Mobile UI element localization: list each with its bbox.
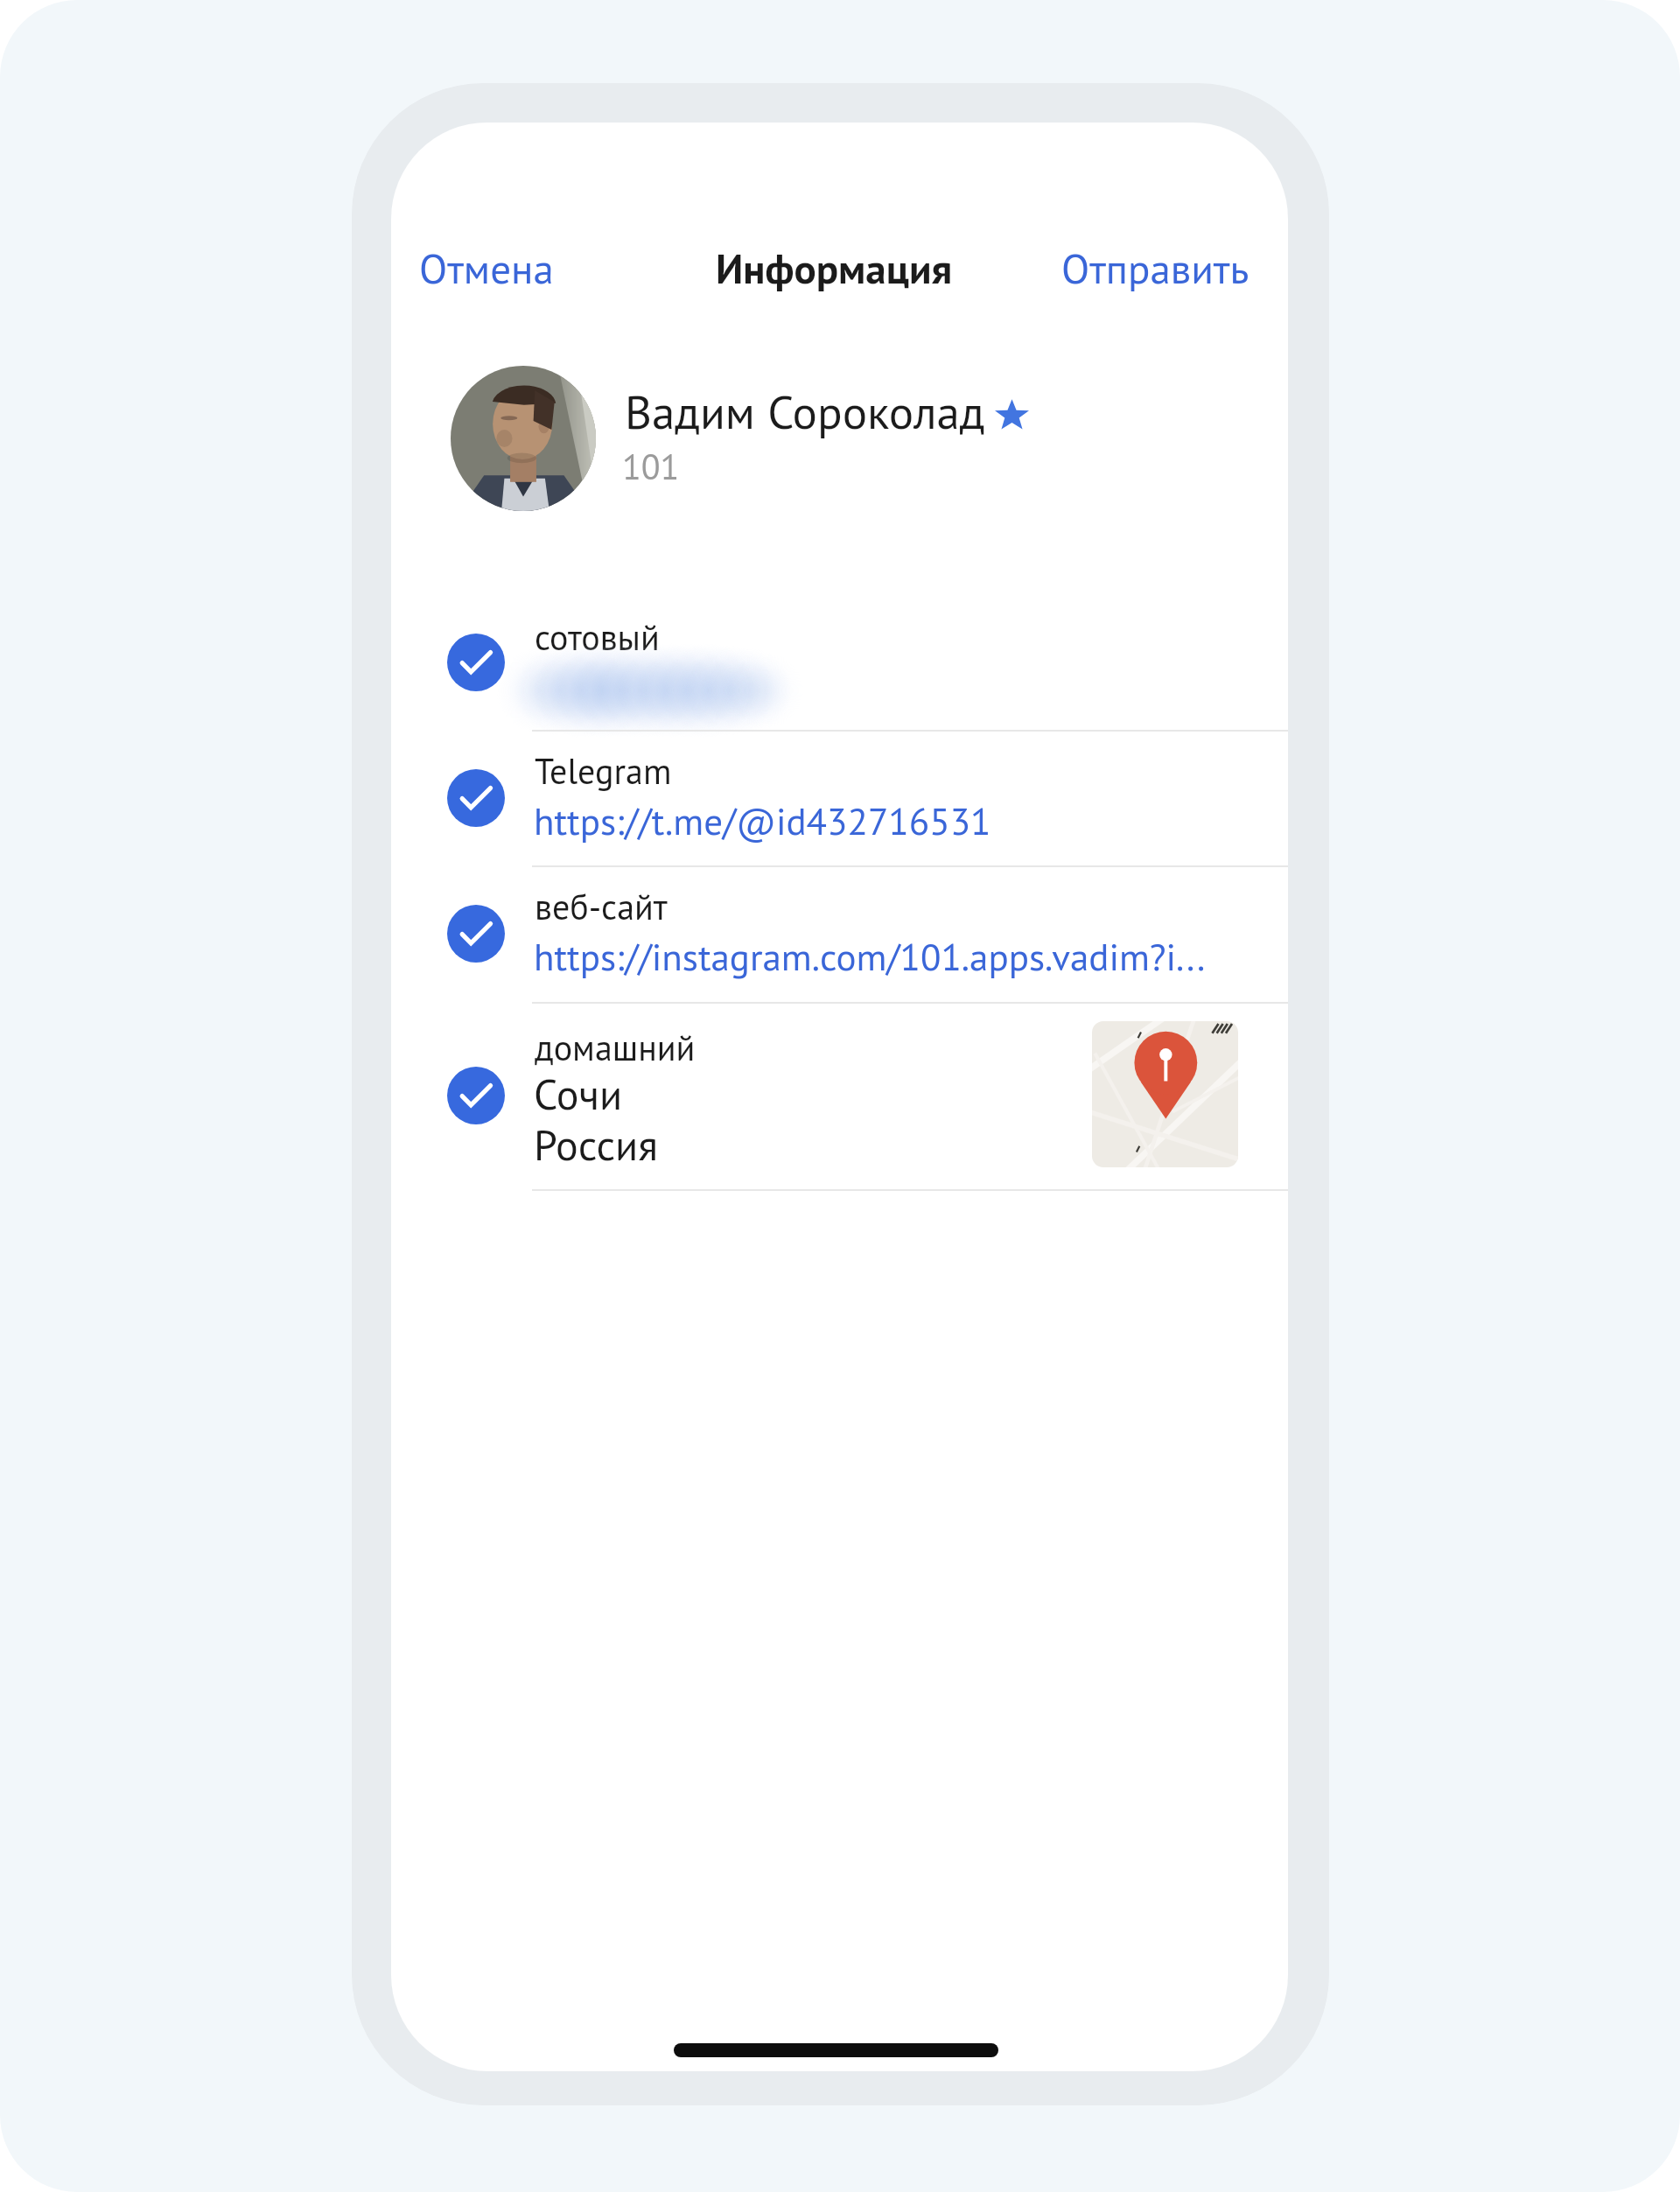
staticText: Вадим Сороколад <box>625 382 985 442</box>
button[interactable]: сотовый selected <box>447 634 505 691</box>
staticText: Отмена <box>419 242 554 295</box>
button[interactable]: Telegram selected <box>447 769 505 827</box>
staticText: Информация <box>716 242 953 295</box>
staticText: Отправить <box>1061 242 1249 295</box>
staticText: Telegram <box>535 748 672 794</box>
staticText: https://instagram.com/101.apps.vadim?i..… <box>534 932 1206 981</box>
button[interactable]: домашний selected <box>447 1067 505 1124</box>
button[interactable]: сотовый selected <box>391 596 1288 732</box>
button[interactable]: Отправить <box>1023 217 1277 319</box>
button[interactable]: Open map <box>1092 1021 1238 1167</box>
staticText: 101 <box>622 444 680 489</box>
staticText: домашний <box>535 1025 696 1070</box>
staticText: веб-сайт <box>535 884 668 929</box>
button[interactable]: Отмена <box>391 217 592 319</box>
staticText: Россия <box>534 1117 659 1172</box>
staticText: сотовый <box>535 614 660 660</box>
button[interactable]: Profile photo <box>451 366 596 511</box>
staticText: https://t.me/@id432716531 <box>534 796 991 845</box>
button[interactable]: веб-сайт selected <box>391 867 1288 1004</box>
button[interactable]: веб-сайт selected <box>447 905 505 963</box>
staticText: Сочи <box>534 1067 623 1121</box>
button[interactable]: домашний selected <box>391 1004 1288 1191</box>
button[interactable]: Telegram selected <box>391 732 1288 867</box>
